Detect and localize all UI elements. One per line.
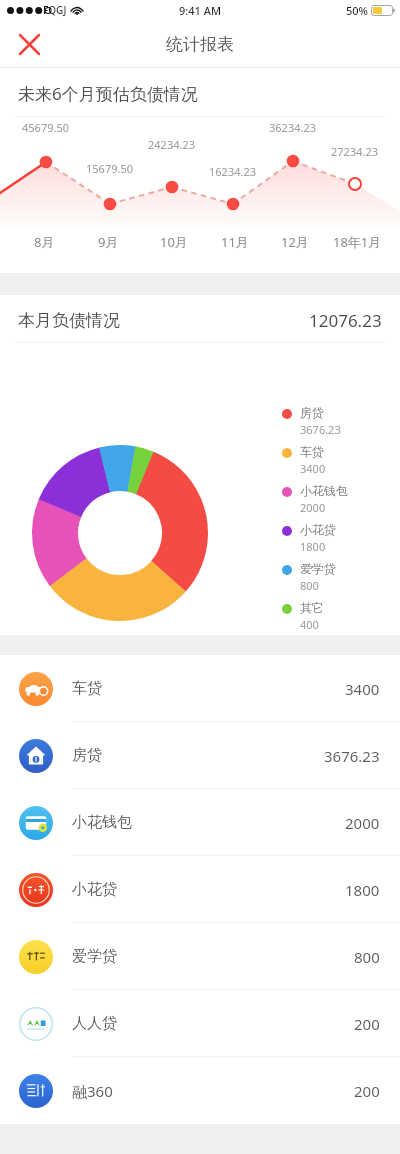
staticText: 9:41 AM [179,3,222,18]
button[interactable]: 车贷 [0,655,400,722]
staticText: 1800 [345,880,380,900]
staticText: 800 [300,578,319,593]
staticText: 车贷 [300,444,324,459]
staticText: 小花钱包 [72,813,132,832]
staticText: 200 [354,1014,380,1034]
button[interactable]: 小花贷 [0,856,400,923]
staticText: 12076.23 [309,309,382,332]
staticText: 2000 [345,813,380,833]
staticText: 24234.23 [148,137,195,152]
staticText: 统计报表 [166,34,234,55]
staticText: 本月负债情况 [18,310,120,331]
staticText: 车贷 [72,679,102,698]
staticText: 爱学贷 [72,947,117,966]
staticText: 50% [346,3,368,18]
staticText: 18年1月 [333,233,382,251]
staticText: 房贷 [300,405,324,420]
staticText: 200 [354,1081,380,1101]
staticText: 3400 [300,461,326,476]
staticText: 3400 [345,679,380,699]
staticText: 融360 [72,1081,113,1101]
staticText: 房贷 [72,746,102,765]
staticText: 小花贷 [300,522,336,537]
staticText: 8月 [34,233,55,251]
staticText: 未来6个月预估负债情况 [18,82,198,105]
staticText: 12月 [281,233,309,251]
staticText: 45679.50 [22,120,69,135]
button[interactable]: 房贷 [0,722,400,789]
staticText: 36234.23 [269,120,316,135]
staticText: 爱学贷 [300,561,336,576]
staticText: 小花贷 [72,880,117,899]
button[interactable]: 小花钱包 [0,789,400,856]
staticText: 15679.50 [86,161,133,176]
staticText: 其它 [300,600,324,615]
staticText: 11月 [221,233,249,251]
staticText: 小花钱包 [300,483,348,498]
staticText: 10月 [160,233,188,251]
staticText: 16234.23 [209,164,256,179]
staticText: 1800 [300,539,326,554]
staticText: 9月 [98,233,119,251]
staticText: 3676.23 [300,422,341,437]
staticText: 3676.23 [324,746,380,766]
staticText: 800 [354,947,380,967]
staticText: 27234.23 [331,144,378,159]
staticText: 2000 [300,500,326,515]
staticText: FQGJ [43,3,67,17]
button[interactable]: 人人贷 [0,990,400,1057]
button[interactable]: 融360 [0,1057,400,1124]
staticText: 人人贷 [72,1014,117,1033]
button[interactable]: 爱学贷 [0,923,400,990]
staticText: 400 [300,617,319,632]
button[interactable]: Close [8,23,50,65]
